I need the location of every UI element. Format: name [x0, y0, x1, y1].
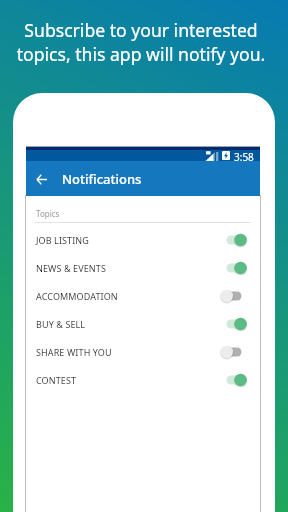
button[interactable]: CONTEST	[26, 366, 260, 394]
staticText: CONTEST	[36, 374, 77, 386]
button[interactable]	[221, 344, 242, 360]
button[interactable]: BUY & SELL	[26, 310, 260, 338]
button[interactable]: JOB LISTING	[26, 226, 260, 254]
staticText: SHARE WITH YOU	[36, 346, 112, 358]
staticText: ACCOMMODATION	[36, 290, 118, 302]
button[interactable]: NEWS & EVENTS	[26, 254, 260, 282]
staticText: Notifications	[62, 170, 142, 188]
button[interactable]	[221, 260, 242, 276]
button[interactable]: ACCOMMODATION	[26, 282, 260, 310]
button[interactable]	[221, 372, 242, 388]
button[interactable]: Back	[31, 169, 51, 189]
staticText: JOB LISTING	[36, 234, 89, 246]
button[interactable]	[221, 232, 242, 248]
button[interactable]: SHARE WITH YOU	[26, 338, 260, 366]
button[interactable]	[221, 288, 242, 304]
staticText: BUY & SELL	[36, 318, 86, 330]
button[interactable]	[221, 316, 242, 332]
staticText: Subscribe to your interested topics, thi…	[0, 18, 285, 66]
staticText: NEWS & EVENTS	[36, 262, 106, 274]
staticText: 3:58	[234, 150, 254, 161]
staticText: Topics	[36, 208, 60, 219]
